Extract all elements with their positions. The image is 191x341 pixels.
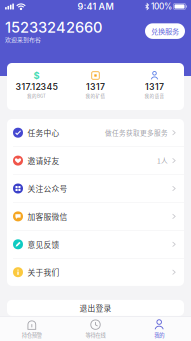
staticText: 100% bbox=[151, 1, 172, 11]
staticText: 关注公众号 bbox=[27, 183, 67, 194]
staticText: 做任务获取更多服务 bbox=[105, 128, 168, 138]
staticText: 我的矿债 bbox=[85, 92, 105, 99]
button[interactable]: 加客服微信 bbox=[7, 203, 184, 231]
staticText: 等待在线 bbox=[85, 331, 105, 339]
staticText: 关于我们 bbox=[27, 267, 59, 278]
staticText: 1317 bbox=[86, 81, 105, 92]
button[interactable]: 等待在线 bbox=[64, 317, 127, 341]
staticText: 317.12345 bbox=[15, 81, 57, 92]
staticText: 欢迎来到布谷 bbox=[5, 35, 41, 44]
button[interactable]: 我的 bbox=[127, 317, 191, 341]
button[interactable]: 意见反馈 bbox=[7, 231, 184, 258]
staticText: 15233242660 bbox=[5, 18, 102, 36]
staticText: 1317 bbox=[145, 81, 164, 92]
button[interactable]: 关于我们 bbox=[7, 258, 184, 286]
staticText: 邀请好友 bbox=[27, 155, 59, 166]
staticText: 我的语音 bbox=[144, 92, 164, 99]
button[interactable]: 持仓预警 bbox=[0, 317, 64, 341]
staticText: 1人 bbox=[157, 156, 168, 165]
staticText: 退出登录 bbox=[79, 302, 111, 313]
staticText: 加客服微信 bbox=[27, 211, 67, 222]
staticText: 兑换服务 bbox=[151, 26, 179, 36]
staticText: 我的BGT bbox=[27, 92, 46, 99]
button[interactable]: 任务中心 bbox=[7, 119, 184, 147]
staticText: 9:41 AM bbox=[77, 1, 113, 12]
button[interactable]: 关注公众号 bbox=[7, 175, 184, 203]
button[interactable]: 兑换服务 bbox=[145, 23, 185, 39]
staticText: 意见反馈 bbox=[27, 239, 59, 250]
staticText: 我的 bbox=[154, 331, 164, 339]
button[interactable]: 退出登录 bbox=[7, 300, 184, 316]
button[interactable]: 邀请好友 bbox=[7, 147, 184, 175]
staticText: 持仓预警 bbox=[22, 331, 42, 339]
staticText: $ bbox=[33, 70, 39, 81]
staticText: 任务中心 bbox=[27, 127, 59, 138]
